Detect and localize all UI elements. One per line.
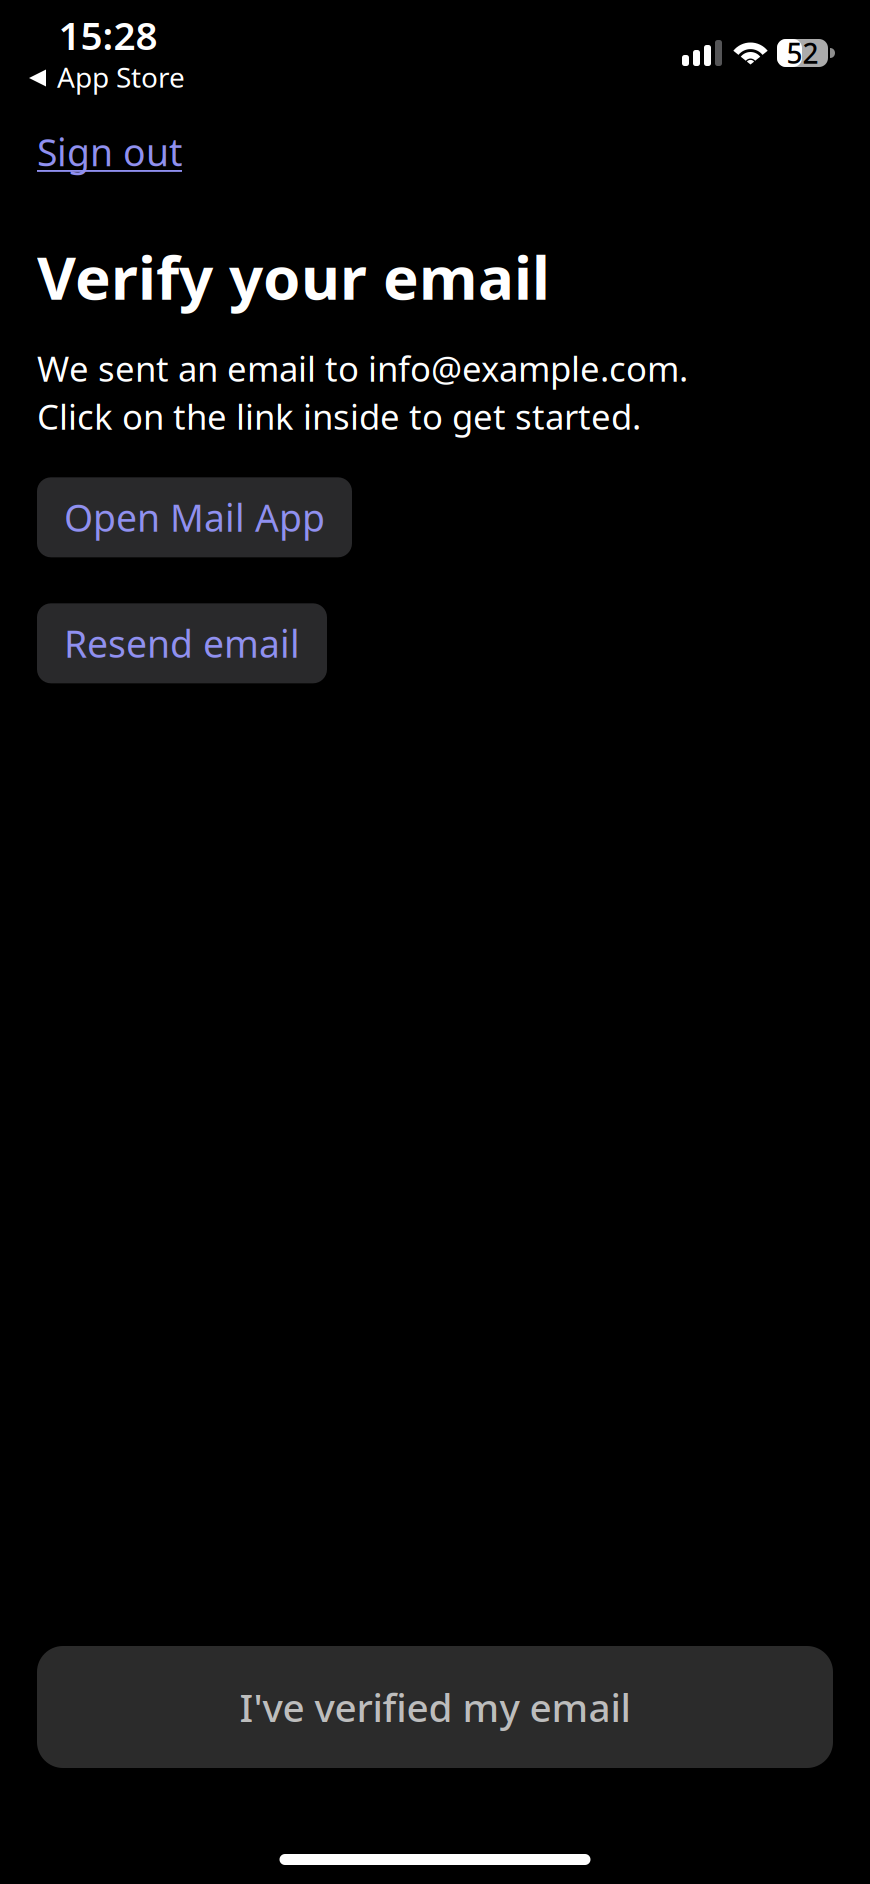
- staticText: Open Mail App: [64, 492, 325, 542]
- staticText: Sign out: [37, 127, 182, 177]
- staticText: I've verified my email: [239, 1681, 630, 1733]
- button[interactable]: I've verified my email: [37, 1646, 833, 1768]
- button[interactable]: Sign out: [37, 127, 182, 177]
- staticText: Verify your email: [37, 237, 550, 316]
- button[interactable]: Resend email: [37, 603, 327, 683]
- staticText: We sent an email to info@example.com.: [37, 345, 688, 391]
- button[interactable]: Open Mail App: [37, 477, 352, 557]
- staticText: App Store: [57, 58, 185, 96]
- staticText: Click on the link inside to get started.: [37, 393, 641, 439]
- staticText: 52: [786, 34, 818, 72]
- staticText: Resend email: [64, 618, 300, 668]
- button[interactable]: App Store: [29, 58, 185, 96]
- staticText: 15:28: [58, 9, 157, 61]
